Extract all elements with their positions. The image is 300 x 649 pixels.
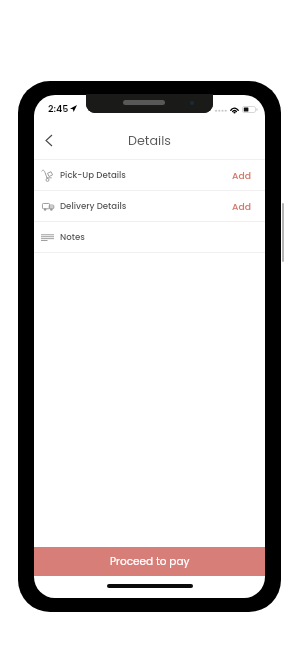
staticText: Delivery Details [60,200,127,212]
staticText: Add [232,169,251,182]
button[interactable]: Back [35,126,63,154]
staticText: Details [128,132,171,150]
button[interactable]: Delivery Details [34,191,265,221]
button[interactable]: Pick-Up Details [34,160,265,190]
staticText: Proceed to pay [110,554,190,569]
staticText: Notes [60,231,85,243]
staticText: Add [232,200,251,213]
button[interactable]: Proceed to pay [34,547,265,576]
staticText: Pick-Up Details [60,169,126,181]
button[interactable]: Notes [34,222,265,252]
staticText: 2:45 [48,102,69,115]
